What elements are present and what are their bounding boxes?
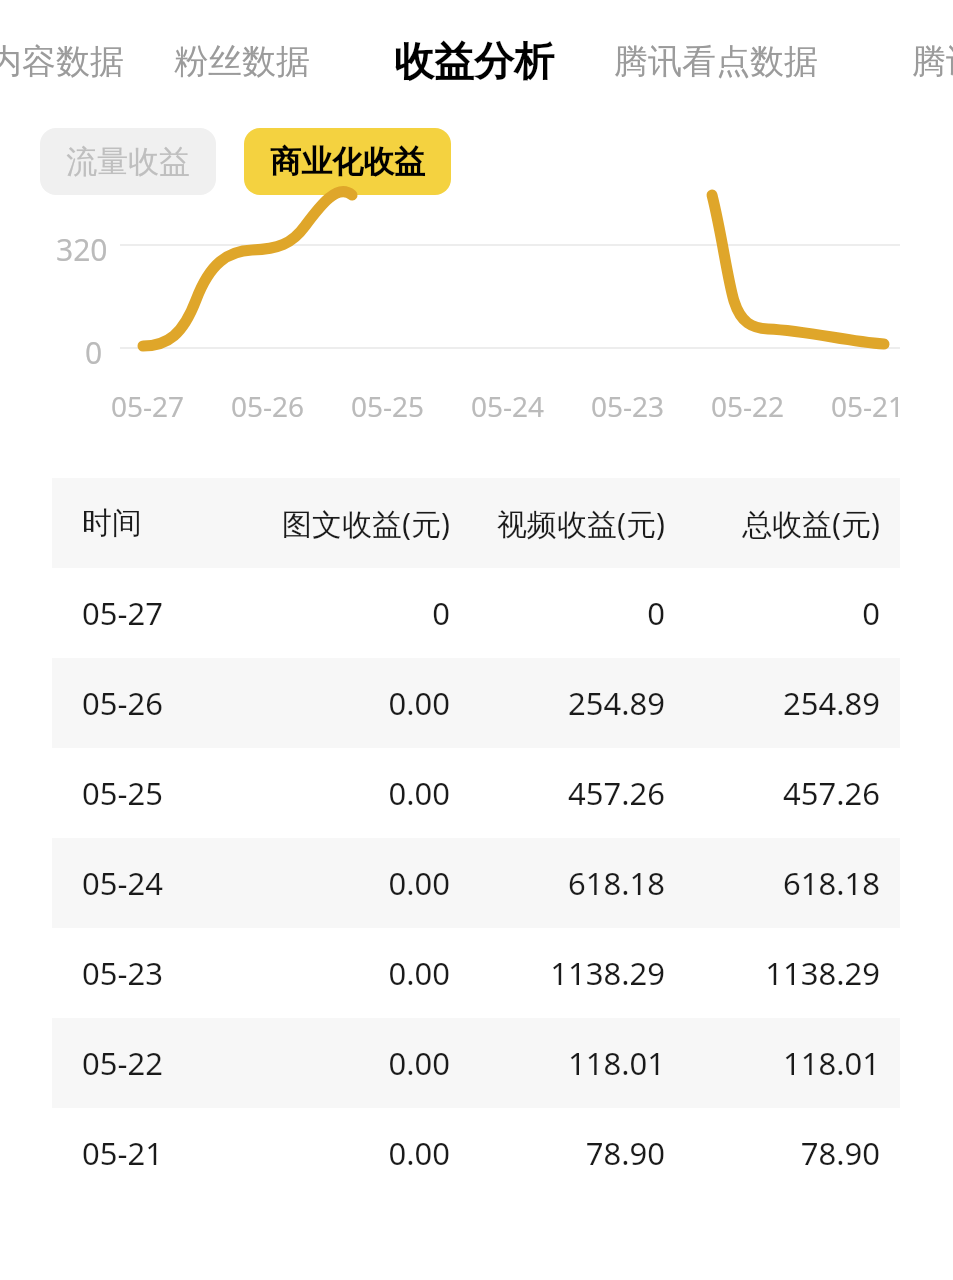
button[interactable]: 收益分析	[392, 36, 556, 86]
staticText: 1138.29	[665, 952, 880, 994]
staticText: 0.00	[239, 772, 450, 814]
staticText: 腾讯	[912, 40, 953, 83]
button[interactable]: 05-24	[52, 838, 900, 928]
button[interactable]: 05-21	[52, 1108, 900, 1198]
staticText: 05-23	[82, 952, 239, 994]
staticText: 05-24	[82, 862, 239, 904]
staticText: 457.26	[665, 772, 880, 814]
staticText: 视频收益(元)	[450, 503, 665, 544]
staticText: 457.26	[450, 772, 665, 814]
staticText: 时间	[82, 504, 239, 542]
staticText: 腾讯看点数据	[614, 40, 818, 83]
staticText: 粉丝数据	[174, 40, 310, 83]
staticText: 118.01	[665, 1042, 880, 1084]
staticText: 0.00	[239, 1132, 450, 1174]
staticText: 05-21	[831, 387, 905, 425]
button[interactable]: 05-22	[52, 1018, 900, 1108]
staticText: 05-26	[231, 387, 305, 425]
staticText: 05-27	[82, 592, 239, 634]
staticText: 总收益(元)	[665, 503, 880, 544]
staticText: 78.90	[665, 1132, 880, 1174]
staticText: 05-27	[111, 387, 185, 425]
button[interactable]: 腾讯	[912, 40, 953, 83]
button[interactable]: 内容数据	[0, 40, 126, 83]
button[interactable]: 05-25	[52, 748, 900, 838]
staticText: 0.00	[239, 862, 450, 904]
staticText: 618.18	[665, 862, 880, 904]
staticText: 内容数据	[0, 40, 124, 83]
staticText: 05-22	[82, 1042, 239, 1084]
staticText: 05-21	[82, 1132, 239, 1174]
button[interactable]: 05-26	[52, 658, 900, 748]
button[interactable]: 粉丝数据	[172, 40, 312, 83]
button[interactable]: 05-23	[52, 928, 900, 1018]
staticText: 320	[56, 229, 108, 270]
staticText: 254.89	[450, 682, 665, 724]
staticText: 0.00	[239, 682, 450, 724]
staticText: 05-22	[711, 387, 785, 425]
staticText: 05-26	[82, 682, 239, 724]
staticText: 78.90	[450, 1132, 665, 1174]
staticText: 0.00	[239, 952, 450, 994]
staticText: 05-24	[471, 387, 545, 425]
staticText: 05-25	[351, 387, 425, 425]
staticText: 图文收益(元)	[239, 503, 450, 544]
button[interactable]: 05-27	[52, 568, 900, 658]
staticText: 0	[239, 592, 450, 634]
staticText: 0	[450, 592, 665, 634]
staticText: 05-23	[591, 387, 665, 425]
staticText: 05-25	[82, 772, 239, 814]
staticText: 254.89	[665, 682, 880, 724]
staticText: 0	[85, 332, 103, 373]
button[interactable]: 腾讯看点数据	[612, 40, 820, 83]
button[interactable]: 流量收益	[40, 128, 216, 195]
staticText: 1138.29	[450, 952, 665, 994]
staticText: 118.01	[450, 1042, 665, 1084]
staticText: 流量收益	[66, 142, 190, 181]
staticText: 618.18	[450, 862, 665, 904]
staticText: 商业化收益	[270, 142, 425, 181]
staticText: 收益分析	[394, 36, 554, 86]
staticText: 0	[665, 592, 880, 634]
button[interactable]: 商业化收益	[244, 128, 451, 195]
staticText: 0.00	[239, 1042, 450, 1084]
